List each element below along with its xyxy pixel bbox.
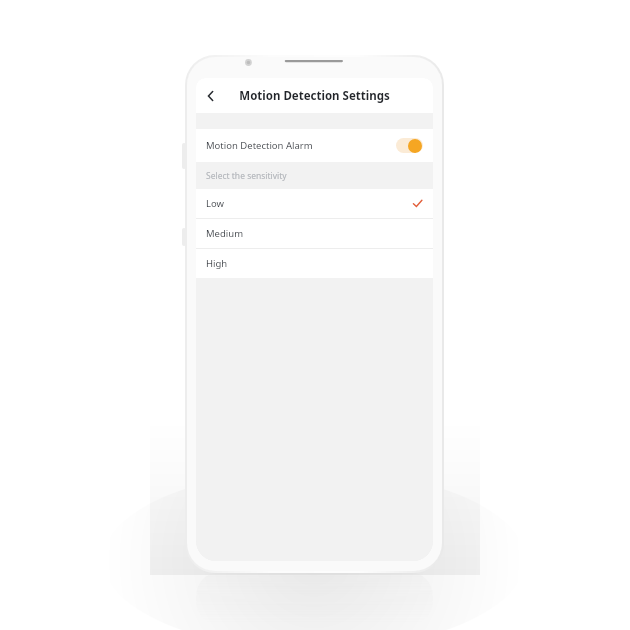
staticText: Select the sensitivity (206, 170, 287, 182)
staticText: High (206, 257, 423, 270)
staticText: Motion Detection Alarm (206, 139, 396, 152)
button[interactable]: High (196, 249, 433, 278)
staticText: Low (206, 197, 412, 210)
staticText: Medium (206, 227, 423, 240)
button[interactable]: Motion Detection Alarm (196, 129, 433, 162)
button[interactable]: Back (196, 81, 226, 111)
button[interactable]: Low (196, 189, 433, 218)
staticText: Motion Detection Settings (239, 88, 390, 104)
button[interactable]: Motion Detection Alarm toggle (396, 138, 423, 153)
button[interactable]: Medium (196, 219, 433, 248)
